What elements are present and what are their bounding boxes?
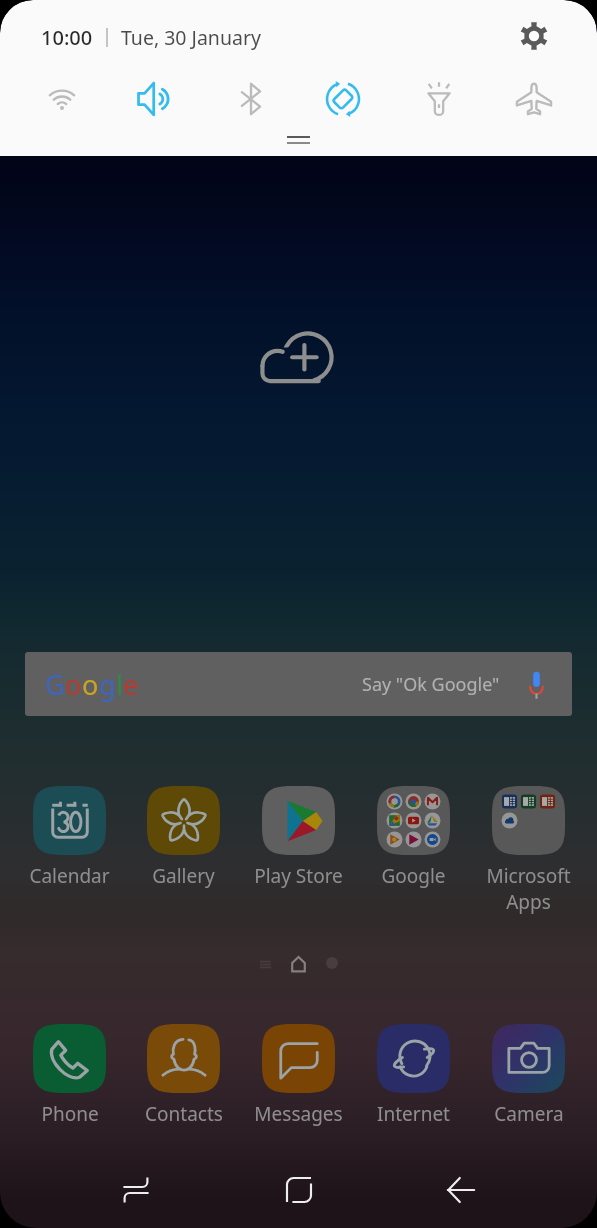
button[interactable]: Gallery xyxy=(127,786,240,889)
staticText: Messages xyxy=(254,1101,343,1127)
button[interactable]: Auto rotate xyxy=(315,71,371,127)
button[interactable]: Internet xyxy=(357,1024,470,1127)
staticText: Microsoft Apps xyxy=(486,863,571,914)
staticText: e xyxy=(123,666,139,703)
button[interactable]: Recents xyxy=(109,1163,163,1217)
staticText: Play Store xyxy=(254,863,343,889)
button[interactable]: Sound xyxy=(128,71,184,127)
button[interactable]: Google xyxy=(357,786,470,889)
button[interactable]: Wi-Fi xyxy=(34,71,90,127)
button[interactable]: Calendar xyxy=(13,786,126,889)
button[interactable]: Contacts xyxy=(127,1024,240,1127)
button[interactable]: Messages xyxy=(242,1024,355,1127)
staticText: Gallery xyxy=(152,863,215,889)
button[interactable]: Phone xyxy=(13,1024,126,1127)
staticText: Camera xyxy=(494,1101,564,1127)
button[interactable]: Home xyxy=(272,1163,326,1217)
button[interactable]: Play Store xyxy=(242,786,355,889)
staticText: l xyxy=(116,666,123,703)
button[interactable]: Camera xyxy=(472,1024,585,1127)
staticText: o xyxy=(65,666,82,703)
button[interactable]: G xyxy=(25,652,572,716)
button[interactable]: Bluetooth xyxy=(223,71,279,127)
staticText: G xyxy=(45,666,65,703)
staticText: Internet xyxy=(377,1101,450,1127)
staticText: Tue, 30 January xyxy=(121,24,261,51)
staticText: Google xyxy=(381,863,446,889)
staticText: Contacts xyxy=(145,1101,223,1127)
staticText: o xyxy=(82,666,99,703)
staticText: Say "Ok Google" xyxy=(362,672,500,697)
button[interactable]: Back xyxy=(434,1163,488,1217)
button[interactable]: Microsoft Apps xyxy=(472,786,585,914)
staticText: 10:00 xyxy=(41,24,93,51)
staticText: g xyxy=(99,666,116,703)
button[interactable]: Flashlight xyxy=(411,71,467,127)
staticText: Calendar xyxy=(29,863,110,889)
staticText: Phone xyxy=(41,1101,99,1127)
button[interactable]: Settings xyxy=(512,14,556,58)
button[interactable]: Airplane mode xyxy=(506,71,562,127)
